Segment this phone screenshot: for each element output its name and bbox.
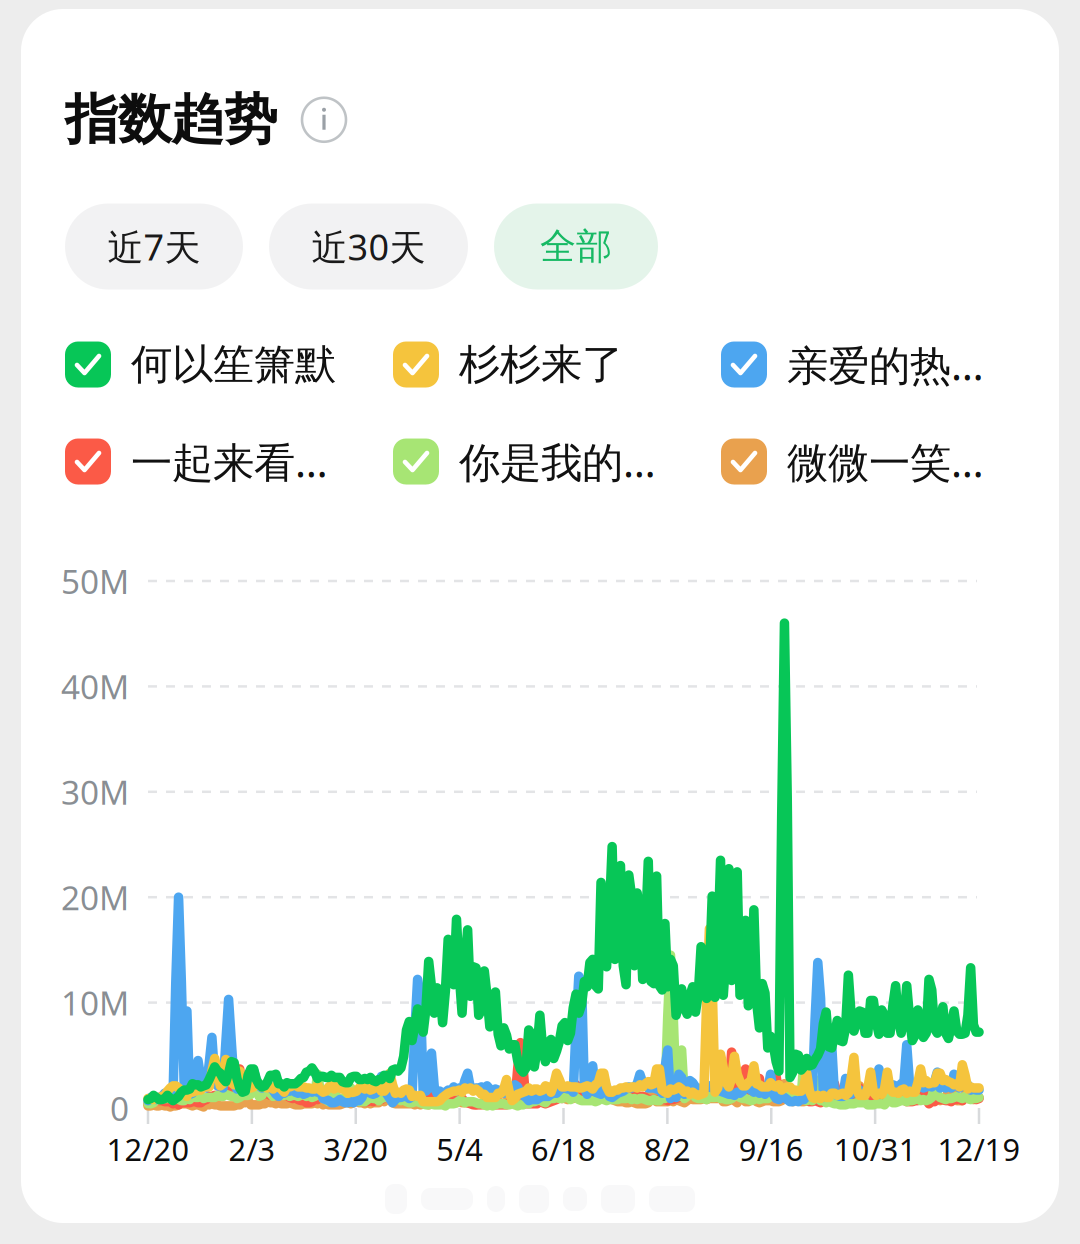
staticText: 0 xyxy=(110,1086,129,1130)
staticText: 10/31 xyxy=(834,1129,917,1169)
button[interactable]: 何以笙箫默 xyxy=(65,335,375,393)
staticText: 2/3 xyxy=(228,1129,275,1169)
staticText: 3/20 xyxy=(323,1129,388,1169)
staticText: 亲爱的热… xyxy=(787,337,984,392)
staticText: 12/20 xyxy=(106,1129,189,1169)
staticText: 50M xyxy=(61,559,129,603)
staticText: 30M xyxy=(61,770,129,814)
button[interactable]: 全部 xyxy=(494,203,658,289)
staticText: 8/2 xyxy=(644,1129,691,1169)
staticText: 微微一笑… xyxy=(787,434,984,489)
staticText: 10M xyxy=(61,980,129,1025)
button[interactable]: 亲爱的热… xyxy=(721,335,1031,393)
button[interactable]: 一起来看… xyxy=(65,432,375,490)
staticText: 9/16 xyxy=(739,1129,804,1169)
button[interactable]: 杉杉来了 xyxy=(393,335,703,393)
staticText: 指数趋势 xyxy=(65,87,277,152)
button[interactable]: 近7天 xyxy=(65,203,243,289)
staticText: 近30天 xyxy=(311,223,425,270)
button[interactable]: 近30天 xyxy=(269,203,468,289)
staticText: 12/19 xyxy=(937,1129,1020,1169)
staticText: 40M xyxy=(61,664,129,709)
staticText: 6/18 xyxy=(531,1129,596,1169)
staticText: 杉杉来了 xyxy=(459,339,623,390)
button[interactable]: 指数趋势说明 xyxy=(301,97,347,143)
staticText: 近7天 xyxy=(107,223,200,270)
button[interactable]: 你是我的… xyxy=(393,432,703,490)
staticText: 5/4 xyxy=(436,1129,483,1169)
staticText: 你是我的… xyxy=(459,434,656,489)
staticText: 全部 xyxy=(540,224,612,269)
staticText: 20M xyxy=(61,875,129,919)
staticText: 一起来看… xyxy=(131,434,328,489)
staticText: 何以笙箫默 xyxy=(131,339,336,390)
button[interactable]: 微微一笑… xyxy=(721,432,1031,490)
